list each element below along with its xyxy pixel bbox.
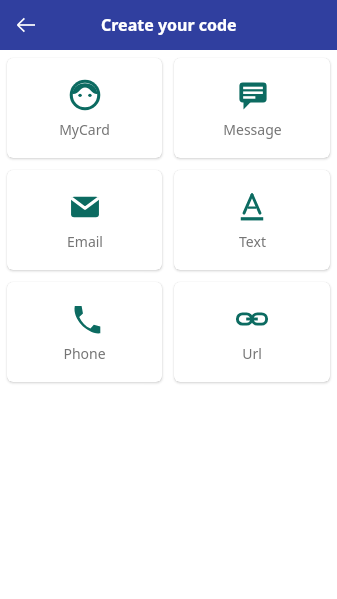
button[interactable]: Back bbox=[10, 9, 42, 41]
button[interactable]: Message bbox=[174, 58, 330, 158]
staticText: Phone bbox=[63, 344, 106, 363]
button[interactable]: Phone bbox=[7, 282, 162, 382]
button[interactable]: Url bbox=[174, 282, 330, 382]
staticText: Create your code bbox=[101, 14, 237, 36]
staticText: Text bbox=[239, 232, 266, 251]
staticText: MyCard bbox=[59, 120, 110, 139]
button[interactable]: Text bbox=[174, 170, 330, 270]
staticText: Url bbox=[242, 344, 262, 363]
button[interactable]: MyCard bbox=[7, 58, 162, 158]
staticText: Message bbox=[223, 120, 282, 139]
staticText: Email bbox=[67, 232, 103, 251]
button[interactable]: Email bbox=[7, 170, 162, 270]
